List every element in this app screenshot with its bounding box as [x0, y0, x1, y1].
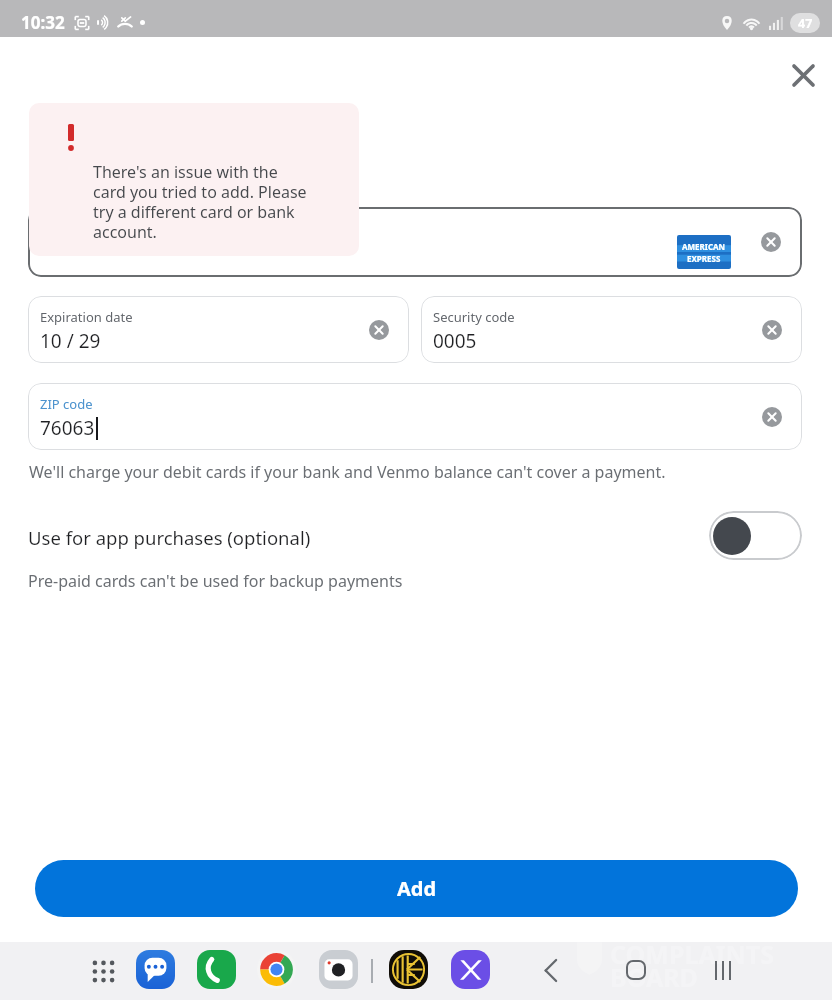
button[interactable]: Close — [778, 50, 828, 100]
button[interactable]: Clear — [762, 407, 782, 427]
button[interactable]: Camera — [319, 950, 358, 989]
button[interactable]: Chrome — [257, 950, 296, 989]
button[interactable]: Keeper — [389, 950, 428, 989]
staticText: AMERICAN — [682, 241, 726, 252]
button[interactable]: AMERICAN — [28, 207, 802, 277]
staticText: COMPLAINTS — [610, 937, 774, 971]
staticText: Use for app purchases (optional) — [28, 525, 311, 550]
staticText: Security code — [433, 308, 515, 326]
staticText: 47 — [798, 15, 813, 32]
staticText: BOARD — [610, 960, 698, 994]
button[interactable]: Recents — [701, 948, 745, 992]
button[interactable]: Use for app purchases toggle — [709, 511, 802, 560]
button[interactable]: X — [451, 950, 490, 989]
staticText: Add — [397, 875, 437, 902]
staticText: EXPRESS — [687, 253, 721, 264]
button[interactable]: ZIP code — [28, 383, 802, 450]
staticText: There's an issue with the card you tried… — [93, 161, 311, 242]
staticText: 76063 — [40, 415, 95, 441]
staticText: We'll charge your debit cards if your ba… — [29, 461, 666, 483]
button[interactable]: Add — [35, 860, 798, 917]
button[interactable]: Messages — [136, 950, 175, 989]
button[interactable]: Clear — [761, 232, 781, 252]
button[interactable]: Home — [614, 948, 658, 992]
button[interactable]: Clear — [369, 320, 389, 340]
staticText: Pre-paid cards can't be used for backup … — [28, 570, 403, 592]
button[interactable]: Clear — [762, 320, 782, 340]
staticText: 10:32 — [21, 11, 65, 34]
staticText: Expiration date — [40, 308, 133, 326]
staticText: ZIP code — [40, 395, 93, 413]
button[interactable]: Security code — [421, 296, 802, 363]
button[interactable]: Expiration date — [28, 296, 409, 363]
staticText: 10 / 29 — [40, 328, 101, 354]
button[interactable]: All apps — [93, 961, 114, 982]
staticText: 0005 — [433, 328, 477, 354]
button[interactable]: Back — [529, 948, 573, 992]
button[interactable]: Phone — [197, 950, 236, 989]
